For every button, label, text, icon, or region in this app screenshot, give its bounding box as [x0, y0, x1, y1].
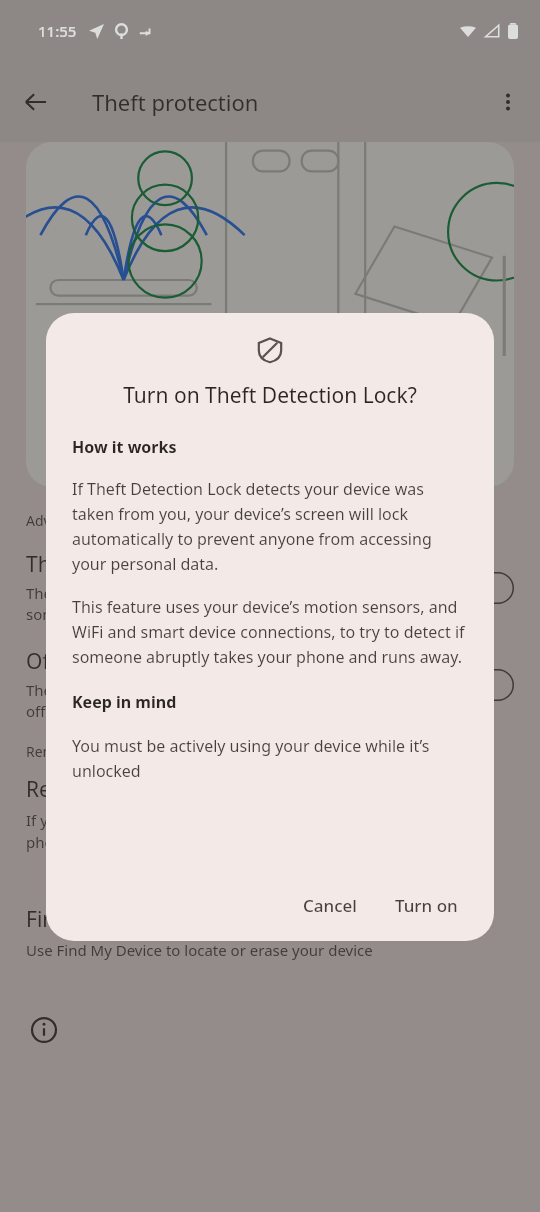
staticText: Use Find My Device to locate or erase yo…: [26, 940, 373, 960]
staticText: Turn on Theft Detection Lock?: [66, 381, 474, 410]
staticText: Keep in mind: [72, 691, 177, 713]
staticText: Theft Detection Lock: [26, 550, 229, 579]
staticText: Find & erase your device: [26, 905, 267, 934]
button[interactable]: More options: [484, 78, 532, 126]
staticText: If your device is lost or stolen, you ca…: [26, 810, 514, 853]
staticText: Theft protection: [92, 87, 259, 117]
button[interactable]: Cancel: [289, 884, 371, 927]
button[interactable]: Remote Lock: [0, 771, 540, 857]
staticText: How it works: [72, 436, 177, 458]
staticText: 11:55: [38, 21, 77, 41]
button[interactable]: Toggle: [462, 572, 514, 604]
staticText: The screen locks automatically if your d…: [26, 680, 353, 722]
button[interactable]: Info: [20, 1006, 68, 1054]
button[interactable]: Offline Device Lock: [0, 643, 540, 726]
staticText: This feature uses your device’s motion s…: [72, 596, 468, 667]
staticText: Advanced protection: [26, 511, 163, 530]
staticText: Remote Lock: [26, 775, 154, 804]
button[interactable]: Turn on: [381, 884, 472, 927]
button[interactable]: Back: [12, 78, 60, 126]
staticText: If Theft Detection Lock detects your dev…: [72, 478, 468, 574]
staticText: Offline Device Lock: [26, 647, 214, 676]
button[interactable]: Toggle: [462, 669, 514, 701]
staticText: Theft Detection Lock locks your screen i…: [26, 583, 310, 625]
staticText: You must be actively using your device w…: [72, 735, 468, 781]
staticText: Cancel: [303, 894, 357, 917]
staticText: Remote Lock: [26, 742, 111, 761]
button[interactable]: Theft Detection Lock: [0, 546, 540, 629]
staticText: Turn on: [395, 894, 458, 917]
button[interactable]: Find & erase your device: [0, 901, 540, 964]
